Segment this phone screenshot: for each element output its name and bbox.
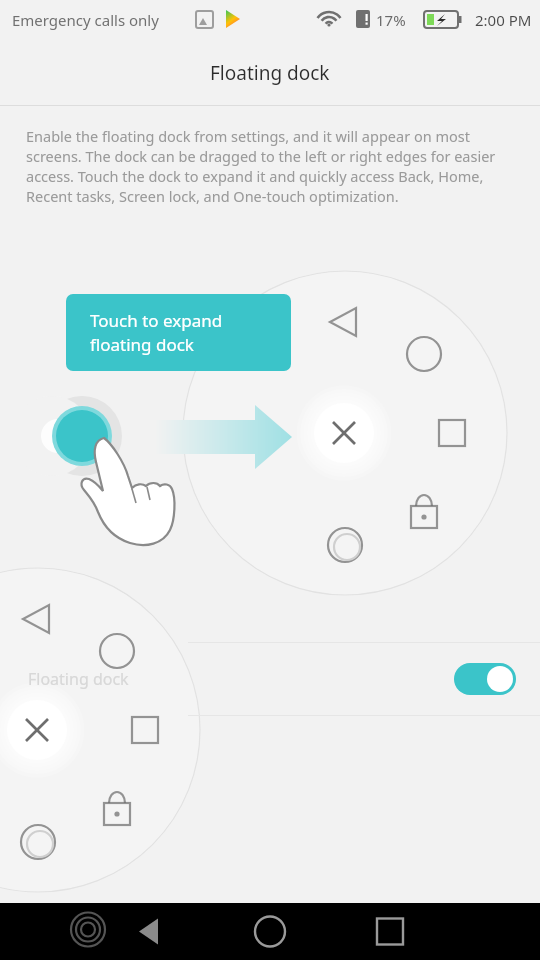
button[interactable]: Touch to expand floating dock bbox=[66, 294, 291, 371]
staticText: Enable the floating dock from settings, … bbox=[26, 126, 510, 206]
staticText: Touch to expand floating dock bbox=[90, 309, 223, 356]
button[interactable]: Back bbox=[0, 903, 180, 960]
button[interactable]: Floating dock bbox=[0, 643, 540, 715]
staticText: Floating dock bbox=[210, 60, 330, 86]
staticText: 17% bbox=[376, 10, 406, 30]
button[interactable]: Home bbox=[225, 903, 315, 960]
staticText: Emergency calls only bbox=[12, 10, 159, 30]
button[interactable]: Floating dock toggle, on bbox=[454, 663, 516, 695]
staticText: Floating dock bbox=[28, 668, 129, 690]
staticText: 2:00 PM bbox=[475, 10, 532, 30]
